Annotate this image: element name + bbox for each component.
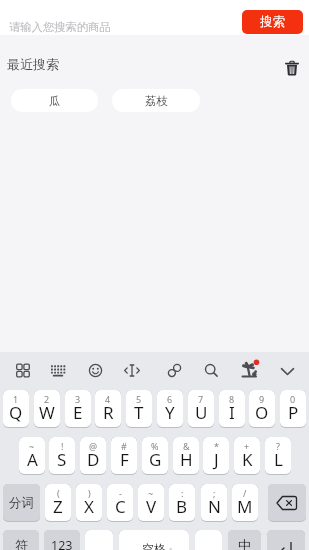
button[interactable]: & [173, 437, 199, 475]
button[interactable]: . [195, 530, 222, 550]
staticText: 8 [229, 393, 235, 405]
staticText: 分词 [9, 495, 34, 511]
staticText: 瓜 [49, 94, 61, 108]
staticText: * [214, 440, 219, 452]
staticText: 。 [169, 541, 177, 550]
button[interactable]: 6 [157, 390, 183, 428]
button[interactable]: / [232, 484, 258, 522]
button[interactable]: + [234, 437, 260, 475]
staticText: B [176, 495, 188, 518]
staticText: H [180, 448, 193, 471]
staticText: 符 [15, 537, 28, 550]
staticText: ? [276, 440, 280, 452]
button[interactable]: 8 [219, 390, 245, 428]
button[interactable]: % [142, 437, 168, 475]
button[interactable]: ( [45, 484, 71, 522]
button[interactable]: 中 [228, 530, 261, 550]
staticText: E [73, 401, 83, 424]
button[interactable]: 0 [280, 390, 306, 428]
button[interactable]: ~ [19, 437, 45, 475]
staticText: 请输入您搜索的商品 [9, 20, 111, 34]
staticText: 4 [105, 393, 111, 405]
staticText: O [255, 401, 269, 424]
button[interactable]: 7 [188, 390, 214, 428]
button[interactable]: ? [265, 437, 291, 475]
button[interactable]: 瓜 [11, 89, 98, 112]
button[interactable]: : [169, 484, 195, 522]
staticText: & [183, 440, 190, 452]
staticText: J [214, 448, 219, 471]
staticText: K [242, 448, 253, 471]
staticText: ( [57, 487, 60, 499]
button[interactable] [271, 353, 305, 388]
button[interactable]: ! [49, 437, 75, 475]
staticText: @ [89, 440, 98, 452]
button[interactable]: 4 [95, 390, 121, 428]
button[interactable]: 荔枝 [112, 89, 200, 112]
button[interactable]: 3 [65, 390, 91, 428]
button[interactable] [268, 484, 306, 522]
staticText: + [244, 440, 250, 452]
button[interactable] [6, 353, 40, 388]
staticText: 9 [259, 393, 265, 405]
staticText: 7 [198, 393, 204, 405]
button[interactable]: 1 [3, 390, 29, 428]
button[interactable] [115, 353, 149, 388]
staticText: T [134, 401, 144, 424]
button[interactable]: * [203, 437, 229, 475]
staticText: I [229, 401, 235, 424]
staticText: 搜索 [260, 14, 285, 30]
staticText: P [288, 401, 299, 424]
staticText: M [237, 495, 253, 518]
button[interactable]: 分词 [3, 484, 40, 522]
button[interactable] [232, 353, 266, 388]
staticText: U [195, 401, 208, 424]
staticText: G [149, 448, 162, 471]
staticText: ) [88, 487, 91, 499]
staticText: 1 [13, 393, 19, 405]
button[interactable] [79, 353, 113, 388]
button[interactable] [284, 60, 300, 76]
staticText: F [120, 448, 129, 471]
staticText: ; [213, 487, 216, 499]
button[interactable]: 空格 [119, 530, 189, 550]
staticText: 中 [238, 537, 252, 550]
button[interactable]: ~ [138, 484, 164, 522]
button[interactable]: @ [80, 437, 106, 475]
staticText: 最近搜索 [7, 56, 59, 72]
staticText: A [27, 448, 38, 471]
button[interactable]: ) [76, 484, 102, 522]
button[interactable]: # [111, 437, 137, 475]
staticText: 123 [51, 537, 73, 550]
staticText: 荔枝 [145, 94, 168, 108]
button[interactable]: 5 [126, 390, 152, 428]
button[interactable] [41, 353, 75, 388]
staticText: ! [61, 440, 64, 452]
staticText: 5 [136, 393, 142, 405]
staticText: 空格 [142, 541, 166, 550]
button[interactable]: 请输入您搜索的商品 [0, 0, 309, 35]
staticText: N [208, 495, 221, 518]
staticText: - [119, 487, 122, 499]
staticText: W [39, 401, 55, 424]
button[interactable] [158, 353, 192, 388]
button[interactable]: ; [201, 484, 227, 522]
button[interactable]: 9 [249, 390, 275, 428]
staticText: L [274, 448, 283, 471]
staticText: / [243, 487, 247, 499]
button[interactable] [195, 353, 229, 388]
button[interactable]: 123 [44, 530, 80, 550]
button[interactable] [267, 530, 305, 550]
staticText: X [84, 495, 94, 518]
button[interactable]: - [107, 484, 133, 522]
staticText: % [151, 440, 159, 452]
staticText: 6 [167, 393, 173, 405]
staticText: 3 [75, 393, 81, 405]
button[interactable]: 2 [34, 390, 60, 428]
staticText: # [121, 440, 127, 452]
button[interactable]: 符 [3, 530, 39, 550]
button[interactable]: 搜索 [242, 10, 303, 34]
staticText: Q [9, 401, 23, 424]
button[interactable]: , [85, 530, 113, 550]
